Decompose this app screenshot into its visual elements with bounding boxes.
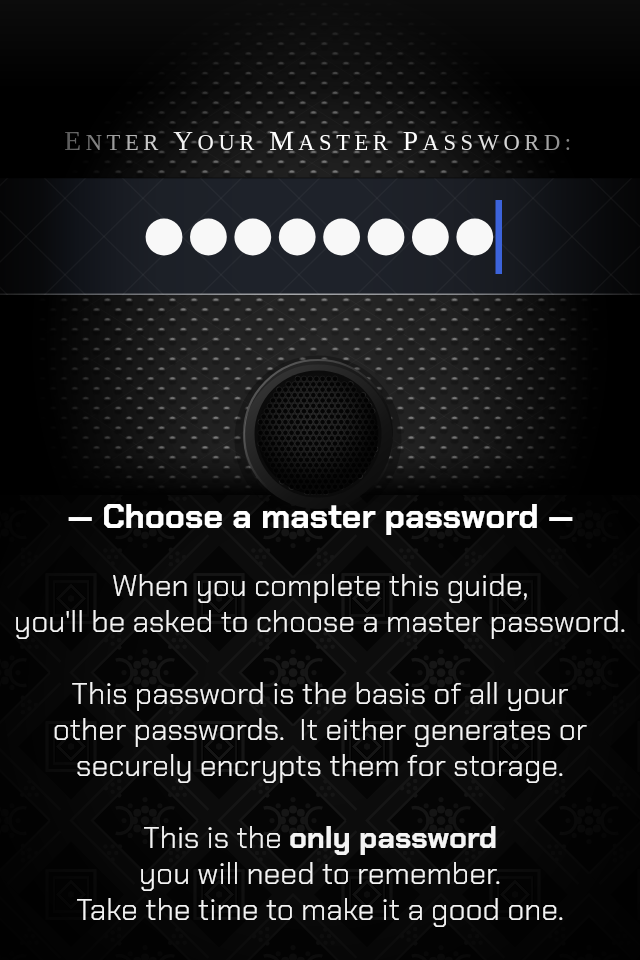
staticText: When you complete this guide, you'll be … [14, 566, 626, 930]
staticText: — Choose a master password — [67, 494, 574, 538]
staticText: ENTER YOUR MASTER PASSWORD: [0, 125, 640, 155]
button[interactable]: Master password entry [0, 178, 640, 295]
